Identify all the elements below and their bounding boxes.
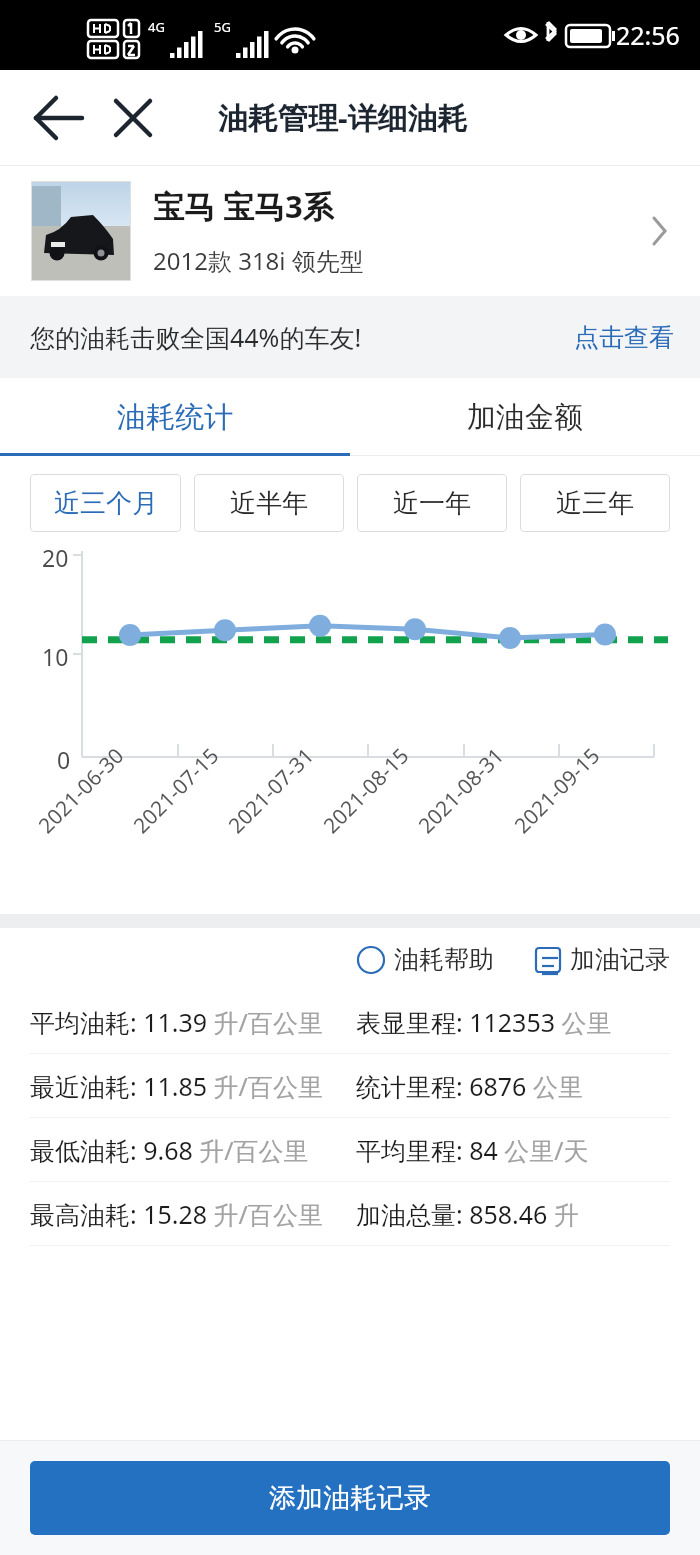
staticText: 添加油耗记录 xyxy=(269,1481,431,1515)
staticText: 平均油耗: 11.39 升/百公里 xyxy=(30,1005,323,1039)
staticText: 2021-09-15 xyxy=(508,741,606,840)
button[interactable]: 近三个月 xyxy=(30,474,181,532)
staticText: 最低油耗: 9.68 升/百公里 xyxy=(30,1133,309,1167)
button[interactable]: 近一年 xyxy=(357,474,507,532)
staticText: 您的油耗击败全国44%的车友! xyxy=(30,320,362,354)
button[interactable]: 近三年 xyxy=(520,474,670,532)
staticText: 最近油耗: 11.85 升/百公里 xyxy=(30,1069,323,1103)
staticText: 加油金额 xyxy=(467,399,583,436)
button[interactable]: 您的油耗击败全国44%的车友! xyxy=(0,296,700,378)
staticText: 2021-07-31 xyxy=(222,741,320,840)
button[interactable]: 加油金额 xyxy=(350,378,700,456)
staticText: 油耗管理-详细油耗 xyxy=(218,97,468,138)
staticText: 加油记录 xyxy=(570,944,670,975)
staticText: 油耗统计 xyxy=(117,399,233,436)
button[interactable]: 添加油耗记录 xyxy=(30,1461,670,1535)
button[interactable]: 宝马 宝马3系 xyxy=(0,166,700,296)
button[interactable]: 油耗帮助 xyxy=(350,938,500,981)
staticText: 近三个月 xyxy=(54,487,158,520)
staticText: 5G xyxy=(214,18,231,36)
staticText: 最高油耗: 15.28 升/百公里 xyxy=(30,1197,323,1231)
staticText: 20 xyxy=(42,542,69,573)
staticText: 2021-08-15 xyxy=(317,741,415,840)
staticText: 表显里程: 112353 公里 xyxy=(356,1005,612,1039)
staticText: 0 xyxy=(57,744,71,775)
staticText: 2021-07-15 xyxy=(127,741,225,840)
staticText: 油耗帮助 xyxy=(394,944,494,975)
staticText: 10 xyxy=(42,641,69,672)
staticText: 22:56 xyxy=(616,18,680,52)
staticText: 近一年 xyxy=(393,487,471,520)
staticText: 点击查看 xyxy=(574,322,674,353)
staticText: 近半年 xyxy=(230,487,308,520)
button[interactable]: 油耗统计 xyxy=(0,378,350,456)
button[interactable]: 加油记录 xyxy=(528,938,676,981)
staticText: 近三年 xyxy=(556,487,634,520)
staticText: 平均里程: 84 公里/天 xyxy=(356,1133,589,1167)
staticText: 宝马 宝马3系 xyxy=(153,185,334,227)
staticText: 4G xyxy=(148,18,165,36)
staticText: 2012款 318i 领先型 xyxy=(153,244,364,277)
staticText: 加油总量: 858.46 升 xyxy=(356,1197,579,1231)
staticText: 2021-08-31 xyxy=(412,741,510,840)
staticText: 统计里程: 6876 公里 xyxy=(356,1069,583,1103)
button[interactable]: Close xyxy=(97,82,169,154)
button[interactable]: 近半年 xyxy=(194,474,344,532)
button[interactable]: Back xyxy=(24,82,96,154)
staticText: 2021-06-30 xyxy=(32,741,130,840)
